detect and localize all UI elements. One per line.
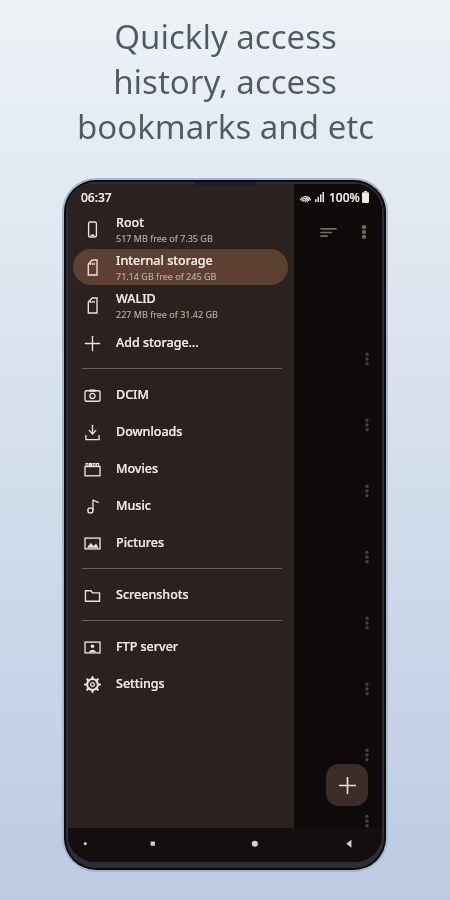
button[interactable]: Add storage… <box>73 324 288 361</box>
staticText: WALID <box>116 290 156 307</box>
staticText: 517 MB free of 7.35 GB <box>116 232 213 244</box>
button[interactable]: Screenshots <box>73 576 288 613</box>
staticText: Root <box>116 214 144 231</box>
button[interactable]: More options <box>350 342 382 376</box>
staticText: FTP server <box>116 638 179 655</box>
staticText: Quickly access <box>114 14 337 59</box>
staticText: history, access <box>113 59 337 104</box>
staticText: Movies <box>116 460 159 477</box>
staticText: 227 MB free of 31.42 GB <box>116 308 218 320</box>
staticText: Add storage… <box>116 334 199 351</box>
button[interactable]: More options <box>350 606 382 640</box>
button[interactable]: Add <box>326 764 368 806</box>
staticText: 06:37 <box>81 189 112 205</box>
button[interactable]: FTP server <box>73 628 288 665</box>
button[interactable]: More options <box>350 738 382 772</box>
button[interactable]: Movies <box>73 450 288 487</box>
button[interactable]: Music <box>73 487 288 524</box>
staticText: Downloads <box>116 423 183 440</box>
button[interactable]: DCIM <box>73 376 288 413</box>
staticText: Internal storage <box>116 252 213 269</box>
button[interactable]: Internal storage <box>73 249 288 285</box>
button[interactable]: More options <box>350 804 382 838</box>
button[interactable]: More options <box>350 540 382 574</box>
button[interactable]: Settings <box>73 665 288 702</box>
staticText: Music <box>116 497 151 514</box>
button[interactable]: Sort <box>310 214 346 250</box>
button[interactable]: More options <box>350 474 382 508</box>
button[interactable]: Downloads <box>73 413 288 450</box>
button[interactable]: Pictures <box>73 524 288 561</box>
staticText: 71.14 GB free of 245 GB <box>116 270 217 282</box>
button[interactable]: WALID <box>73 287 288 323</box>
button[interactable]: More options <box>346 214 382 250</box>
button[interactable]: More options <box>350 408 382 442</box>
staticText: Pictures <box>116 534 165 551</box>
button[interactable]: Root <box>73 211 288 247</box>
button[interactable]: More options <box>350 672 382 706</box>
staticText: Settings <box>116 675 165 692</box>
staticText: bookmarks and etc <box>77 104 374 149</box>
staticText: 100% <box>329 189 360 205</box>
staticText: Screenshots <box>116 586 189 603</box>
staticText: DCIM <box>116 386 149 403</box>
